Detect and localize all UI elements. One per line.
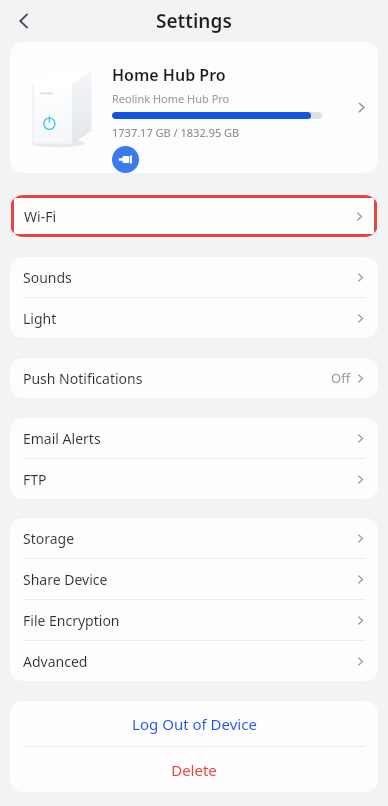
button[interactable]: Log Out of Device — [10, 701, 378, 746]
button[interactable]: Storage — [10, 518, 378, 558]
staticText: File Encryption — [23, 611, 355, 630]
button[interactable]: Power — [112, 146, 139, 173]
staticText: Light — [23, 309, 355, 328]
button[interactable]: Wi-Fi — [14, 198, 374, 234]
staticText: Advanced — [23, 652, 355, 671]
button[interactable]: FTP — [10, 459, 378, 499]
button[interactable]: Share Device — [10, 559, 378, 599]
staticText: Settings — [156, 8, 232, 34]
button[interactable]: Delete — [10, 747, 378, 792]
staticText: Reolink Home Hub Pro — [112, 91, 230, 106]
staticText: Home Hub Pro — [112, 64, 226, 86]
button[interactable]: Back — [4, 1, 44, 41]
staticText: Wi-Fi — [24, 207, 354, 226]
button[interactable]: Home Hub Pro — [10, 42, 378, 173]
button[interactable]: Sounds — [10, 257, 378, 297]
button[interactable]: File Encryption — [10, 600, 378, 640]
staticText: 1737.17 GB / 1832.95 GB — [112, 125, 240, 140]
button[interactable]: Email Alerts — [10, 418, 378, 458]
staticText: Log Out of Device — [132, 714, 257, 734]
staticText: Share Device — [23, 570, 355, 589]
staticText: Storage — [23, 529, 355, 548]
button[interactable]: Advanced — [10, 641, 378, 681]
button[interactable]: Light — [10, 298, 378, 338]
button[interactable]: Push Notifications — [10, 358, 378, 398]
staticText: Delete — [171, 760, 217, 780]
staticText: FTP — [23, 470, 355, 489]
staticText: Sounds — [23, 268, 355, 287]
staticText: Push Notifications — [23, 369, 331, 388]
staticText: Email Alerts — [23, 429, 355, 448]
staticText: Off — [331, 369, 351, 387]
